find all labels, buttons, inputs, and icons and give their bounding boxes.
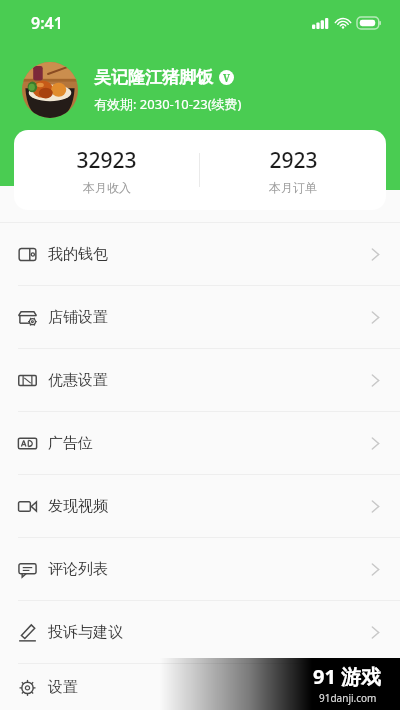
staticText: 发现视频 <box>48 497 108 516</box>
staticText: 吴记隆江猪脚饭 <box>94 67 213 88</box>
staticText: 91danji.com <box>319 691 377 705</box>
button[interactable]: 32923 <box>14 130 199 210</box>
button[interactable]: 投诉与建议 <box>0 601 400 663</box>
staticText: 我的钱包 <box>48 245 108 264</box>
staticText: 有效期: 2030-10-23(续费) <box>94 95 242 113</box>
staticText: 店铺设置 <box>48 308 108 327</box>
staticText: 投诉与建议 <box>48 623 123 642</box>
other: Verified merchant <box>219 70 234 85</box>
button[interactable]: 设置 <box>0 664 400 710</box>
button[interactable]: 优惠设置 <box>0 349 400 411</box>
staticText: 2923 <box>269 146 318 175</box>
staticText: 9:41 <box>31 12 63 34</box>
staticText: 评论列表 <box>48 560 108 579</box>
staticText: 本月收入 <box>83 180 131 195</box>
button[interactable]: 2923 <box>200 130 386 210</box>
button[interactable]: 广告位 <box>0 412 400 474</box>
staticText: 优惠设置 <box>48 371 108 390</box>
button[interactable]: 我的钱包 <box>0 223 400 285</box>
staticText: 设置 <box>48 678 78 697</box>
button[interactable]: 发现视频 <box>0 475 400 537</box>
button[interactable]: 评论列表 <box>0 538 400 600</box>
button[interactable]: 吴记隆江猪脚饭 <box>0 62 400 118</box>
staticText: 32923 <box>76 146 137 175</box>
staticText: V <box>223 71 230 85</box>
staticText: 本月订单 <box>269 180 317 195</box>
button[interactable]: 店铺设置 <box>0 286 400 348</box>
staticText: 91 游戏 <box>313 663 382 690</box>
staticText: 广告位 <box>48 434 93 453</box>
